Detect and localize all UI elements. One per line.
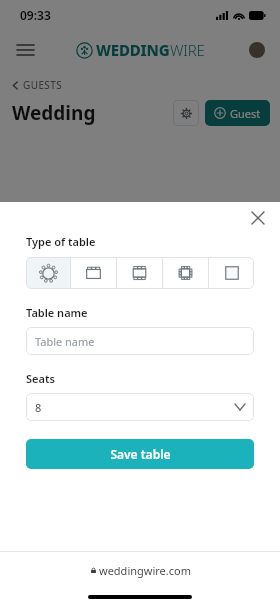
staticText: Table name: [35, 334, 95, 349]
button[interactable]: Table type: [117, 257, 162, 289]
button[interactable]: Table type: [209, 257, 254, 289]
button[interactable]: Table name: [26, 327, 254, 355]
staticText: Message guests: [183, 321, 268, 336]
staticText: Type of table: [26, 234, 96, 249]
staticText: Seats: [26, 371, 55, 386]
staticText: Table: [28, 321, 56, 336]
button[interactable]: Message guests: [168, 321, 268, 336]
staticText: WEDDING: [96, 40, 170, 60]
button[interactable]: Profile: [244, 37, 270, 63]
button[interactable]: Table type: [71, 257, 116, 289]
staticText: Guest: [230, 106, 261, 121]
staticText: WIRE: [170, 40, 205, 60]
button[interactable]: Table type: [163, 257, 208, 289]
button[interactable]: Table type: [26, 257, 70, 289]
button[interactable]: Table: [12, 321, 56, 336]
staticText: Wedding: [12, 100, 96, 126]
button[interactable]: Close: [246, 206, 270, 230]
button[interactable]: Settings: [173, 100, 199, 126]
button[interactable]: Save table: [26, 439, 254, 469]
staticText: Table name: [26, 305, 88, 320]
staticText: weddingwire.com: [99, 563, 191, 578]
button[interactable]: Menu: [10, 35, 40, 65]
button[interactable]: Guest: [214, 100, 261, 126]
staticText: Save table: [110, 446, 171, 462]
button[interactable]: 8: [26, 393, 254, 421]
staticText: 09:33: [20, 7, 51, 23]
staticText: GUESTS: [23, 78, 63, 92]
button[interactable]: Groups: [12, 292, 273, 313]
staticText: 8: [35, 400, 42, 415]
